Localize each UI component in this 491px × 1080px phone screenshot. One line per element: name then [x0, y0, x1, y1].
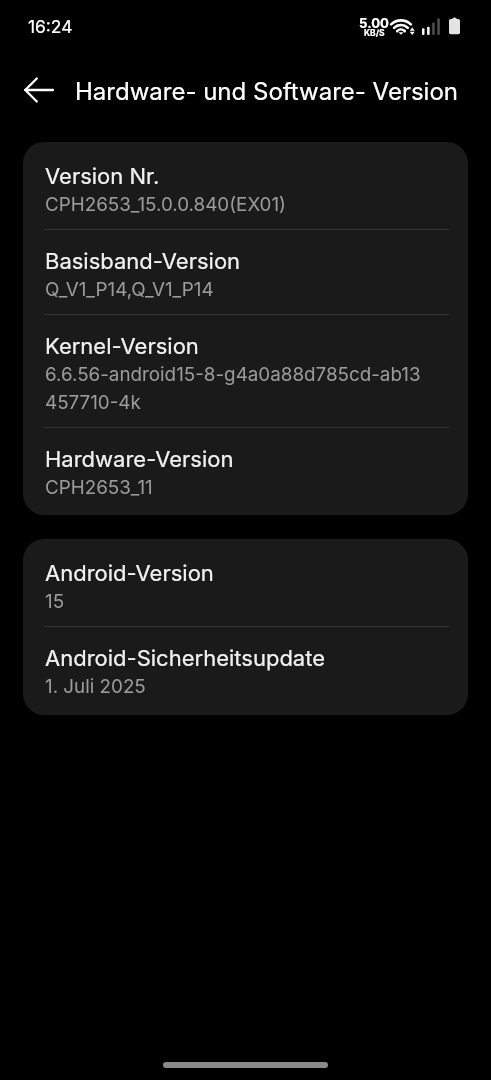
staticText: Kernel-Version	[45, 332, 199, 359]
button[interactable]: Android-Sicherheitsupdate	[23, 627, 468, 712]
button[interactable]: Hardware-Version	[23, 428, 468, 512]
staticText: 15	[45, 586, 65, 614]
staticText: CPH2653_11	[45, 472, 153, 500]
staticText: Version Nr.	[45, 162, 160, 189]
staticText: KB/S	[364, 28, 385, 38]
button[interactable]: Android-Version	[23, 542, 468, 627]
staticText: Android-Version	[45, 559, 214, 586]
staticText: CPH2653_15.0.0.840(EX01)	[45, 189, 286, 217]
staticText: 16:24	[28, 16, 73, 37]
staticText: 5.00	[359, 15, 389, 31]
staticText: Android-Sicherheitsupdate	[45, 644, 326, 671]
staticText: Q_V1_P14,Q_V1_P14	[45, 274, 214, 302]
button[interactable]: Kernel-Version	[23, 315, 468, 428]
staticText: 6.6.56-android15-8-g4a0a88d785cd-ab13 45…	[45, 359, 421, 415]
staticText: 1. Juli 2025	[45, 671, 146, 699]
staticText: Basisband-Version	[45, 247, 241, 274]
staticText: Hardware- und Software- Version	[75, 77, 459, 106]
button[interactable]: Basisband-Version	[23, 230, 468, 315]
button[interactable]: Back	[2, 64, 54, 116]
staticText: Hardware-Version	[45, 445, 234, 472]
button[interactable]: Version Nr.	[23, 145, 468, 230]
